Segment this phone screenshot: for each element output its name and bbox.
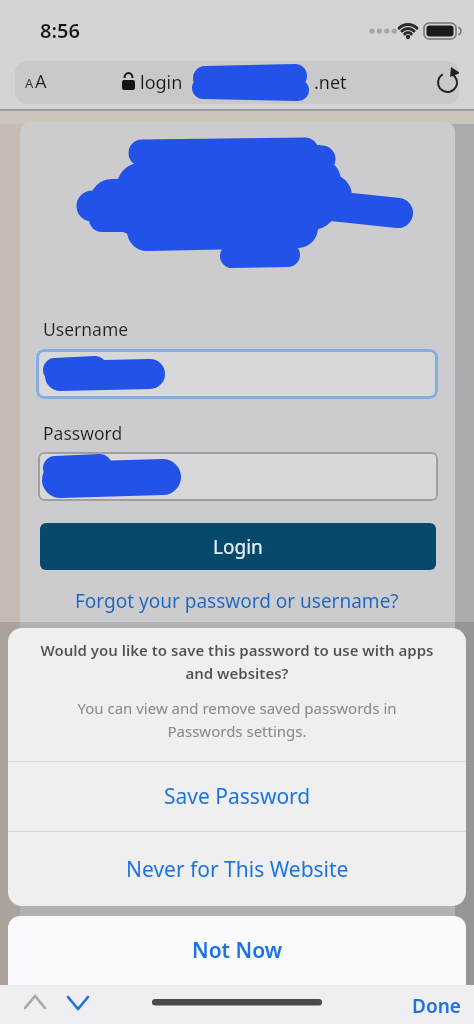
staticText: login bbox=[140, 70, 183, 95]
staticText: A bbox=[35, 69, 47, 94]
staticText: Save Password bbox=[164, 782, 311, 811]
staticText: You can view and remove saved passwords … bbox=[8, 698, 466, 741]
button[interactable] bbox=[23, 61, 67, 104]
button[interactable]: Forgot your password or username? bbox=[0, 588, 474, 614]
staticText: A bbox=[25, 74, 34, 92]
button[interactable] bbox=[36, 349, 438, 399]
staticText: Username bbox=[43, 317, 129, 341]
button[interactable]: Not Now bbox=[8, 916, 466, 985]
button[interactable]: Never for This Website bbox=[8, 832, 466, 906]
staticText: Login bbox=[213, 534, 263, 560]
staticText: Would you like to save this password to … bbox=[8, 640, 466, 683]
button[interactable]: Login bbox=[40, 523, 436, 570]
staticText: Password bbox=[43, 421, 123, 445]
staticText: Never for This Website bbox=[126, 855, 349, 884]
button[interactable] bbox=[38, 452, 438, 501]
staticText: .net bbox=[314, 70, 347, 95]
button[interactable] bbox=[430, 61, 459, 104]
button[interactable]: Done bbox=[412, 993, 461, 1019]
button[interactable] bbox=[60, 985, 96, 1024]
staticText: Not Now bbox=[192, 936, 283, 965]
button[interactable]: Save Password bbox=[8, 762, 466, 831]
staticText: Forgot your password or username? bbox=[75, 588, 399, 614]
button[interactable] bbox=[18, 985, 52, 1024]
staticText: 8:56 bbox=[40, 17, 80, 44]
